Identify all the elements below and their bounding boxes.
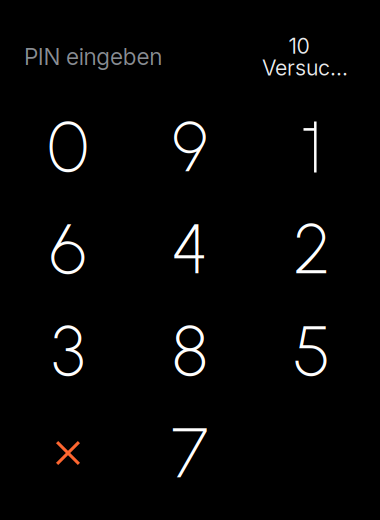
button[interactable]: 8 <box>129 300 251 402</box>
staticText: 7 <box>171 411 208 495</box>
staticText: 10 <box>288 33 309 59</box>
button[interactable]: 6 <box>7 198 129 300</box>
staticText: 2 <box>293 207 330 291</box>
staticText: 8 <box>172 309 208 393</box>
staticText: 6 <box>49 207 86 291</box>
button[interactable]: 3 <box>7 300 129 402</box>
staticText: 9 <box>172 105 208 189</box>
staticText: 0 <box>47 105 88 189</box>
staticText: 4 <box>171 207 208 291</box>
button[interactable]: 5 <box>251 300 373 402</box>
staticText: 3 <box>51 309 84 393</box>
button[interactable]: 2 <box>251 198 373 300</box>
button[interactable]: 4 <box>129 198 251 300</box>
button[interactable]: 7 <box>129 402 251 504</box>
button[interactable]: Delete <box>7 402 129 504</box>
button[interactable]: 0 <box>7 96 129 198</box>
staticText: Versuc... <box>262 55 348 81</box>
button[interactable]: 9 <box>129 96 251 198</box>
staticText: 5 <box>293 309 331 393</box>
staticText: PIN eingeben <box>24 43 162 70</box>
button[interactable] <box>251 96 373 198</box>
